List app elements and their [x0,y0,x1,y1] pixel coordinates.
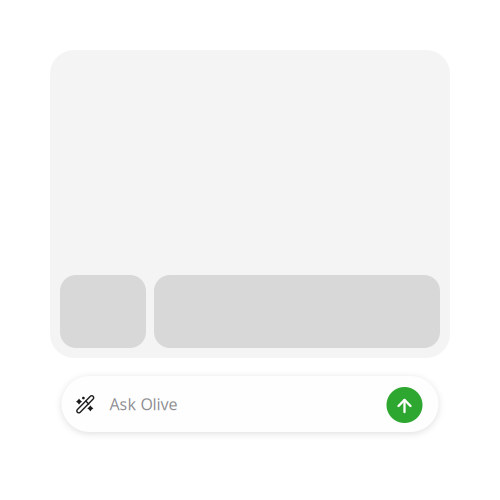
button[interactable]: Send [386,386,422,422]
staticText: Ask Olive [109,393,177,415]
button[interactable]: Ask Olive [61,376,438,432]
button[interactable]: Attachment [60,275,146,348]
